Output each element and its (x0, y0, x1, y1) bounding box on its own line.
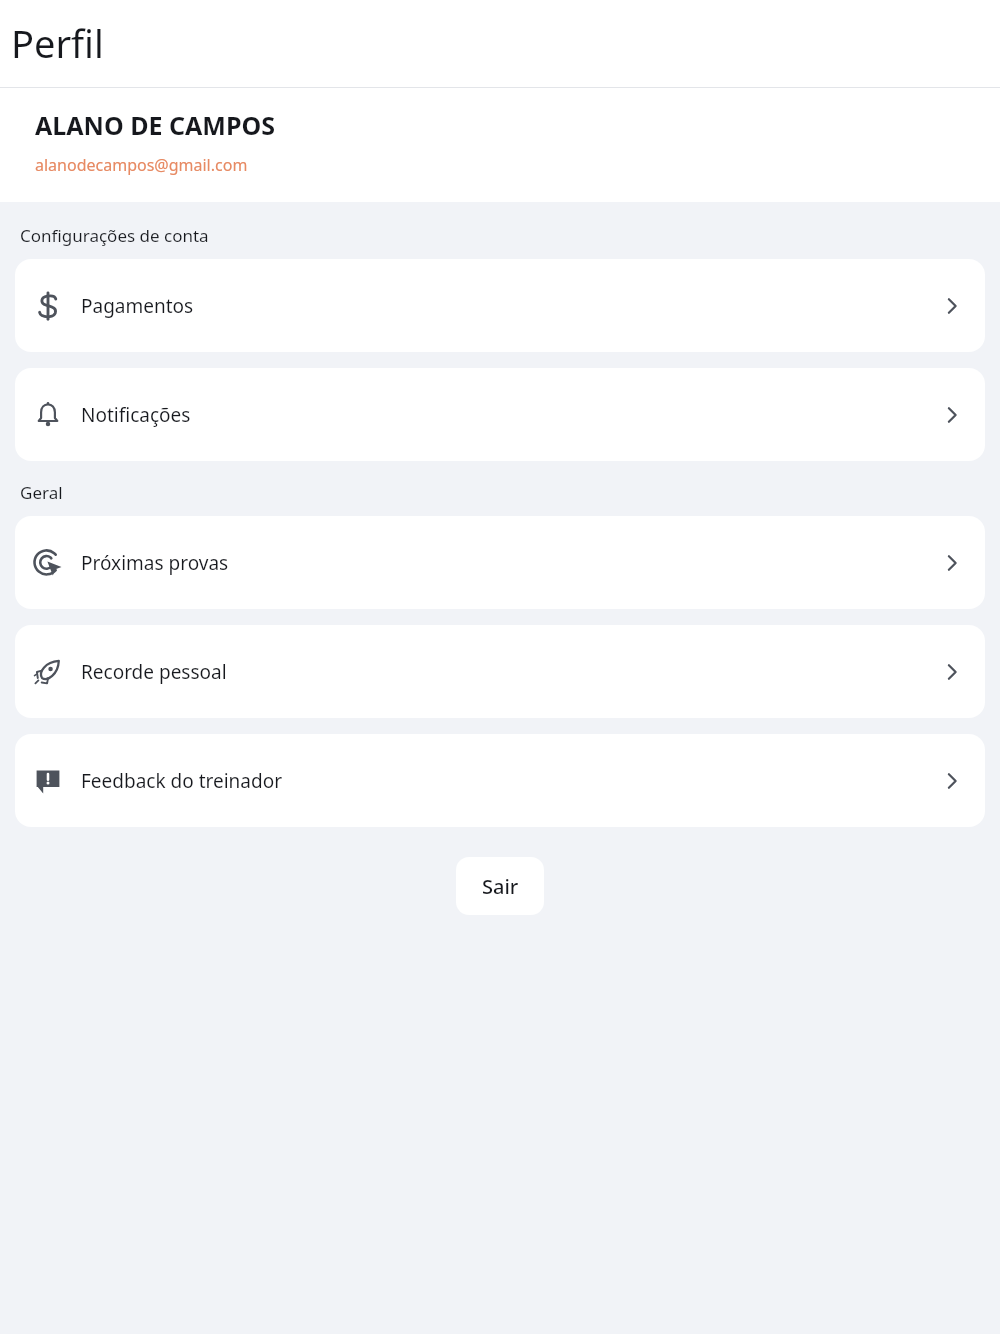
other: Abrir Feedback do treinador (939, 768, 965, 794)
other: Abrir Pagamentos (939, 293, 965, 319)
button[interactable]: Sair (456, 857, 544, 915)
staticText: Próximas provas (81, 550, 229, 576)
button[interactable]: Pagamentos (15, 259, 985, 352)
staticText: ALANO DE CAMPOS (35, 108, 275, 142)
button[interactable]: Próximas provas (15, 516, 985, 609)
staticText: Recorde pessoal (81, 659, 227, 685)
staticText: alanodecampos@gmail.com (35, 154, 248, 176)
staticText: Pagamentos (81, 293, 194, 319)
button[interactable]: Notificações (15, 368, 985, 461)
button[interactable]: Recorde pessoal (15, 625, 985, 718)
staticText: Geral (20, 481, 63, 504)
staticText: Perfil (11, 17, 104, 69)
staticText: Sair (482, 873, 519, 900)
other: Abrir Recorde pessoal (939, 659, 965, 685)
staticText: Notificações (81, 402, 191, 428)
staticText: Feedback do treinador (81, 768, 283, 794)
other: Abrir Notificações (939, 402, 965, 428)
button[interactable]: Feedback do treinador (15, 734, 985, 827)
other: Abrir Próximas provas (939, 550, 965, 576)
staticText: Configurações de conta (20, 224, 209, 247)
